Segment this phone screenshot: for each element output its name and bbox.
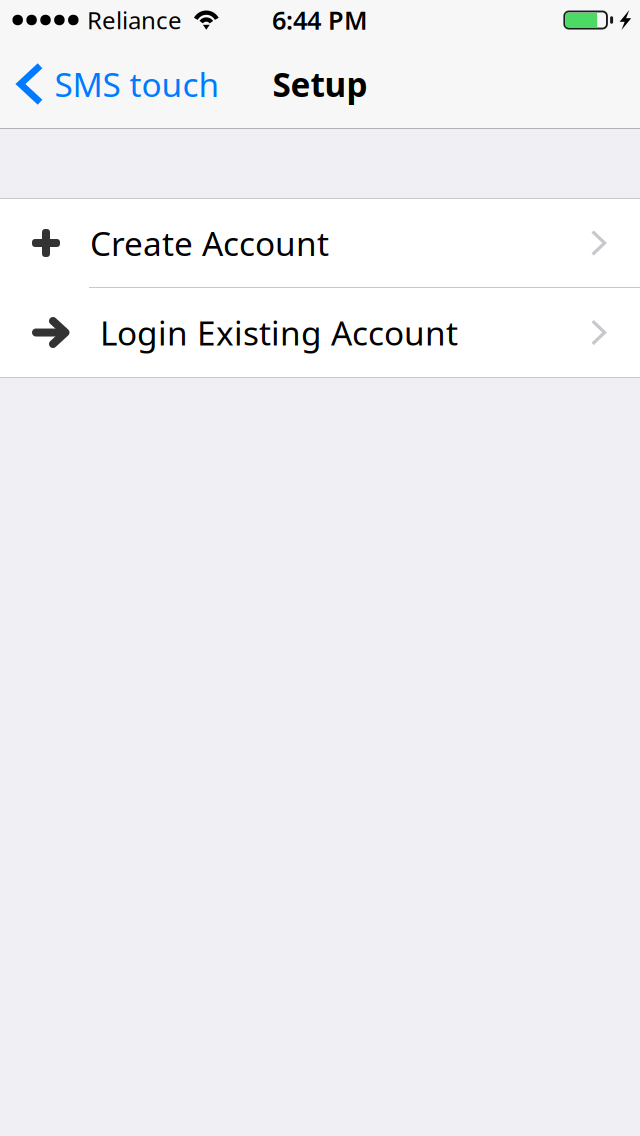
button[interactable]: SMS touch: [0, 40, 231, 128]
staticText: Setup: [272, 62, 367, 106]
button[interactable]: Login Existing Account: [0, 288, 640, 377]
staticText: Login Existing Account: [100, 310, 458, 355]
staticText: 6:44 PM: [272, 3, 368, 37]
staticText: Reliance: [87, 4, 182, 36]
button[interactable]: Create Account: [0, 199, 640, 287]
staticText: SMS touch: [54, 62, 219, 106]
staticText: Create Account: [90, 221, 329, 265]
